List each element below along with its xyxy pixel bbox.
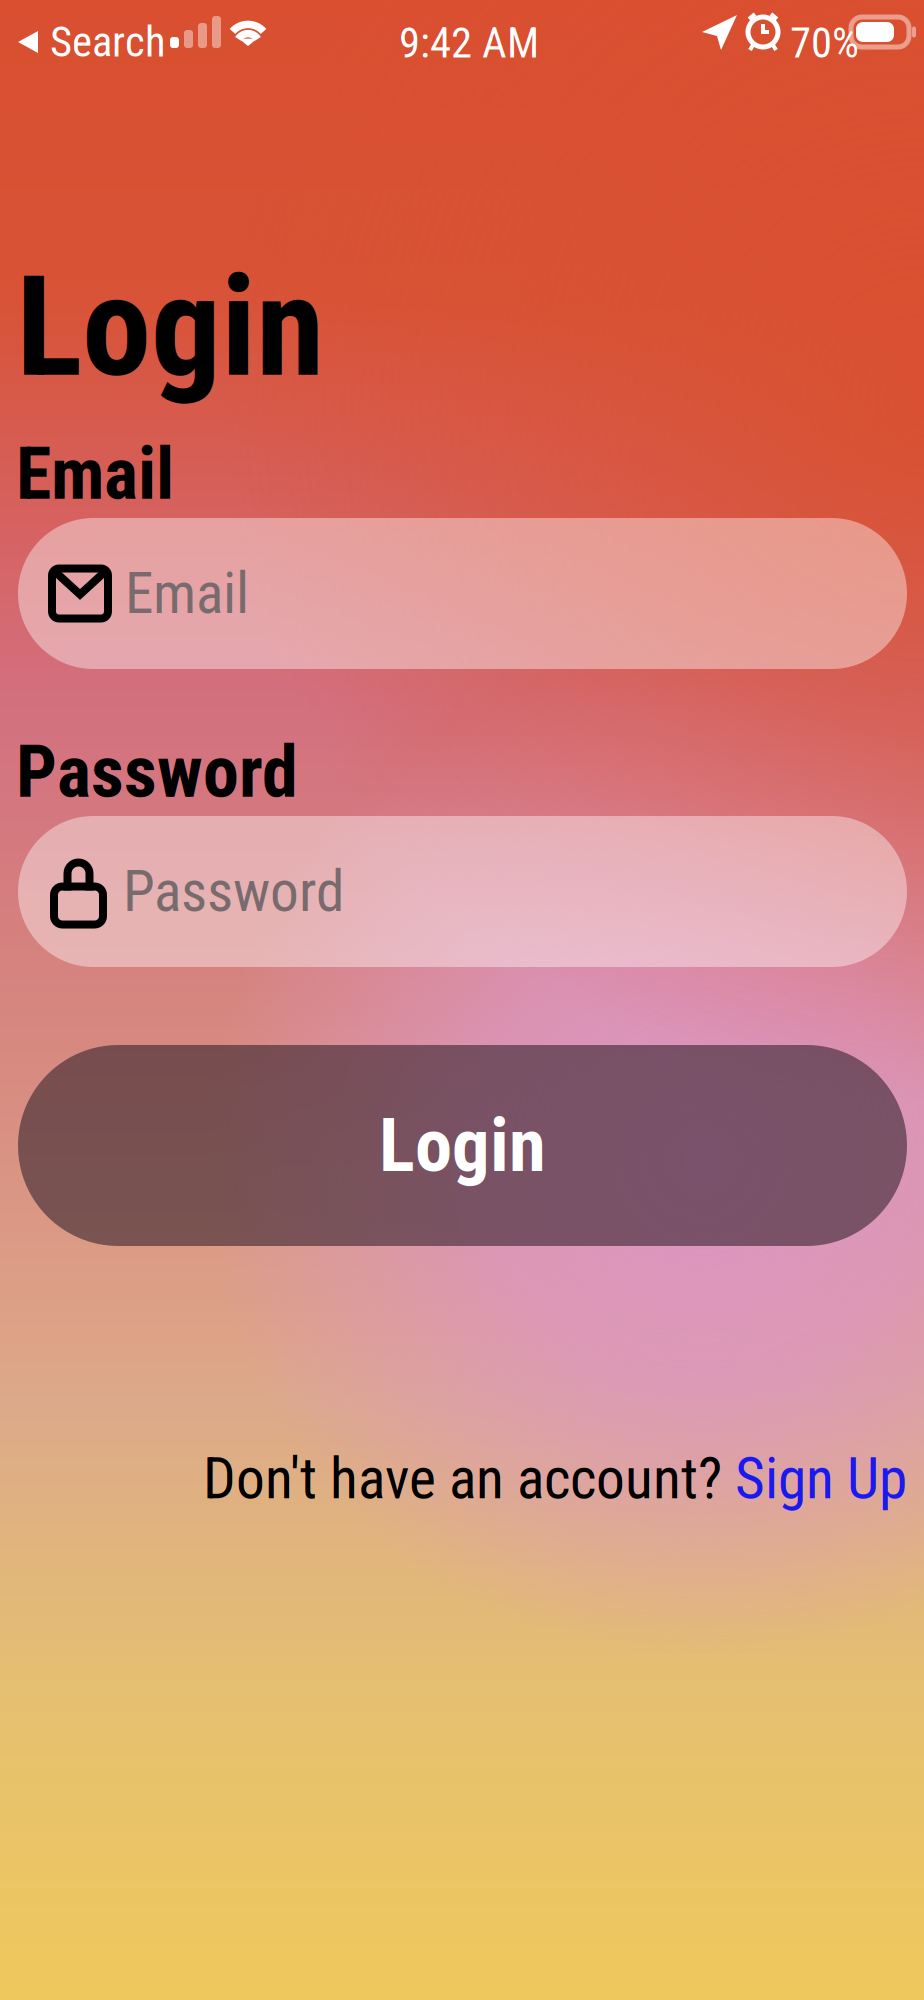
button[interactable]: Email: [18, 518, 907, 669]
button[interactable]: Password: [18, 816, 907, 967]
button[interactable]: Back to Search: [18, 17, 166, 67]
staticText: Password: [123, 858, 344, 925]
staticText: Email: [125, 560, 249, 627]
staticText: 9:42 AM: [399, 18, 539, 68]
staticText: Password: [16, 730, 298, 814]
button[interactable]: Sign Up: [735, 1445, 907, 1512]
staticText: Login: [379, 1102, 546, 1189]
button[interactable]: Login: [18, 1045, 907, 1246]
staticText: 70%: [790, 18, 859, 68]
staticText: Login: [16, 246, 324, 408]
staticText: Search: [50, 17, 166, 67]
staticText: Email: [16, 432, 174, 516]
staticText: Don't have an account?: [203, 1445, 735, 1512]
staticText: Sign Up: [735, 1445, 907, 1512]
